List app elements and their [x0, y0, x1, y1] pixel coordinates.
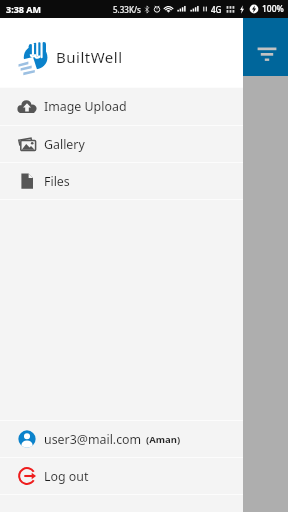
button[interactable]: Log out	[0, 458, 243, 494]
staticText: BuiltWell	[56, 47, 123, 67]
staticText: user3@mail.com	[44, 431, 142, 448]
staticText: 3:38 AM	[6, 3, 42, 15]
button[interactable]: Gallery	[0, 126, 243, 162]
staticText: Gallery	[44, 136, 85, 153]
staticText: 4G	[211, 4, 222, 15]
staticText: (Aman)	[146, 433, 181, 446]
button[interactable]: Files	[0, 163, 243, 199]
button[interactable]: Filter	[256, 46, 278, 63]
button[interactable]: Image Upload	[0, 88, 243, 125]
staticText: 100%	[262, 3, 284, 15]
staticText: Log out	[44, 468, 89, 485]
staticText: 5.33K/s	[113, 4, 141, 15]
staticText: Files	[44, 173, 70, 190]
button[interactable]: user3@mail.com	[0, 421, 243, 457]
staticText: Image Upload	[44, 98, 127, 115]
